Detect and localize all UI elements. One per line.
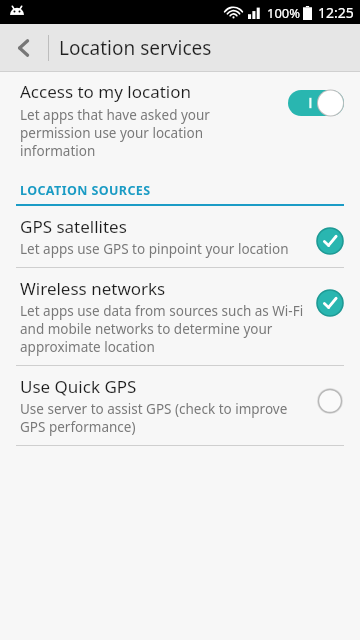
button[interactable]: Back [0, 24, 48, 71]
button[interactable]: Access to my location toggle [288, 90, 344, 116]
staticText: GPS satellites [20, 215, 127, 238]
staticText: Location services [59, 35, 212, 61]
staticText: 100% [267, 4, 301, 22]
button[interactable]: Access to my location [0, 72, 360, 166]
button[interactable]: GPS satellites [0, 206, 360, 267]
staticText: Wireless networks [20, 277, 166, 300]
staticText: 12:25 [318, 3, 354, 22]
staticText: Use Quick GPS [20, 375, 137, 398]
staticText: Let apps use data from sources such as W… [20, 302, 306, 356]
staticText: Let apps use GPS to pinpoint your locati… [20, 240, 289, 258]
staticText: LOCATION SOURCES [20, 182, 151, 199]
staticText: Use server to assist GPS (check to impro… [20, 400, 306, 436]
staticText: Access to my location [20, 80, 191, 103]
staticText: Let apps that have asked your permission… [20, 106, 280, 160]
button[interactable]: Use Quick GPS [0, 366, 360, 445]
button[interactable]: Wireless networks [0, 268, 360, 365]
